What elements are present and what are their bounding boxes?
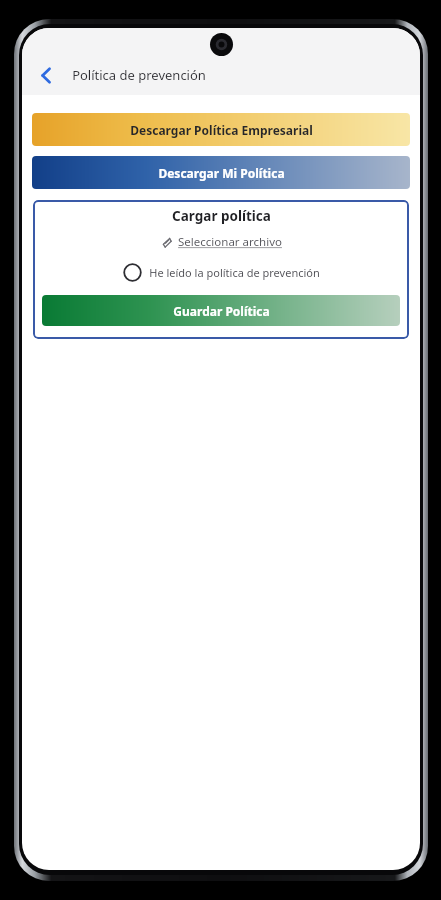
- staticText: Política de prevención: [72, 66, 206, 84]
- staticText: Guardar Política: [173, 303, 270, 319]
- staticText: Descargar Mi Política: [158, 165, 285, 181]
- staticText: Descargar Política Empresarial: [130, 122, 313, 138]
- staticText: He leído la política de prevención: [149, 265, 320, 280]
- staticText: Seleccionar archivo: [178, 234, 282, 250]
- staticText: Cargar política: [172, 207, 271, 225]
- button[interactable]: Guardar Política: [42, 295, 400, 326]
- button[interactable]: Descargar Mi Política: [32, 156, 410, 189]
- button[interactable]: Seleccionar archivo: [156, 232, 286, 252]
- button[interactable]: Descargar Política Empresarial: [32, 113, 410, 146]
- button[interactable]: He leído la política de prevención: [119, 261, 324, 284]
- button[interactable]: Back: [29, 58, 63, 92]
